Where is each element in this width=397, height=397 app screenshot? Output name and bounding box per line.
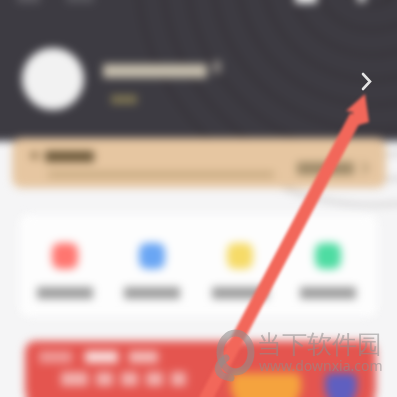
button[interactable] [25,341,376,397]
button[interactable] [118,243,186,299]
button[interactable] [12,138,386,188]
button[interactable]: 8 [0,36,397,122]
button[interactable] [31,243,99,299]
button[interactable] [206,243,274,299]
staticText: www.downxia.com [259,356,383,375]
staticText: 当下软件园 [257,329,382,360]
staticText: 8 [212,55,222,78]
button[interactable] [294,243,362,299]
